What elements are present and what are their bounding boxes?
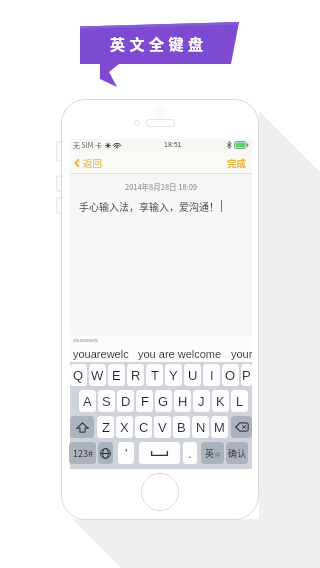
button[interactable]: . — [183, 442, 197, 464]
button[interactable]: C — [135, 416, 152, 438]
button[interactable]: X — [116, 416, 133, 438]
button[interactable]: I — [203, 364, 220, 386]
button[interactable]: A — [79, 390, 96, 412]
button[interactable]: V — [154, 416, 171, 438]
button[interactable]: Shift — [70, 416, 94, 438]
staticText: H — [178, 394, 188, 409]
staticText: V — [158, 420, 167, 435]
staticText: U — [188, 368, 198, 383]
staticText: 18:51 — [164, 141, 182, 149]
staticText: M — [214, 420, 225, 435]
staticText: J — [198, 394, 205, 409]
staticText: 2014年8月28日 18:09 — [70, 181, 252, 192]
button[interactable]: H — [174, 390, 191, 412]
staticText: Y — [169, 368, 178, 383]
button[interactable]: T — [146, 364, 163, 386]
staticText: . — [188, 446, 192, 461]
button[interactable]: B — [173, 416, 190, 438]
staticText: 返回 — [83, 156, 103, 170]
button[interactable]: W — [89, 364, 106, 386]
button[interactable]: N — [192, 416, 209, 438]
other: Backspace — [235, 422, 249, 432]
staticText: F — [141, 394, 149, 409]
staticText: D — [121, 394, 131, 409]
staticText: C — [139, 420, 149, 435]
staticText: 123# — [73, 447, 93, 460]
button[interactable]: you are welcome — [138, 348, 222, 360]
button[interactable]: J — [193, 390, 210, 412]
button[interactable]: S — [98, 390, 115, 412]
staticText: E — [112, 368, 121, 383]
staticText: 手心输入法，享输入，爱沟通！ — [79, 199, 219, 213]
other: Switch language — [100, 448, 111, 459]
staticText: P — [242, 368, 251, 383]
button[interactable]: ' — [118, 442, 134, 464]
staticText: 英 — [205, 447, 215, 460]
button[interactable]: E — [108, 364, 125, 386]
button[interactable]: F — [136, 390, 153, 412]
staticText: Z — [102, 420, 110, 435]
staticText: 无 SIM 卡 — [73, 140, 103, 150]
button[interactable]: O — [222, 364, 239, 386]
button[interactable]: Switch language — [98, 442, 113, 464]
button[interactable]: 确认 — [226, 442, 248, 464]
staticText: S — [102, 394, 111, 409]
button[interactable]: L — [231, 390, 248, 412]
button[interactable]: Y — [165, 364, 182, 386]
button[interactable]: Space — [139, 442, 180, 464]
button[interactable]: your — [231, 348, 252, 360]
button[interactable]: P — [241, 364, 252, 386]
button[interactable]: Z — [97, 416, 114, 438]
staticText: W — [91, 368, 104, 383]
staticText: L — [236, 394, 244, 409]
button[interactable]: K — [212, 390, 229, 412]
button[interactable]: youarewelc — [73, 348, 129, 360]
button[interactable]: M — [211, 416, 228, 438]
button[interactable]: 123# — [69, 442, 96, 464]
staticText: 英文全键盘 — [110, 33, 208, 55]
button[interactable]: 英 — [201, 442, 224, 464]
button[interactable]: 返回 — [74, 156, 103, 170]
staticText: T — [151, 368, 159, 383]
staticText: A — [83, 394, 92, 409]
staticText: ' — [125, 446, 128, 461]
staticText: G — [158, 394, 169, 409]
staticText: 中 — [215, 451, 221, 459]
button[interactable]: D — [117, 390, 134, 412]
button[interactable]: G — [155, 390, 172, 412]
button[interactable]: R — [127, 364, 144, 386]
staticText: youarewelc — [73, 337, 99, 343]
button[interactable]: Backspace — [231, 416, 252, 438]
staticText: 确认 — [228, 447, 247, 460]
staticText: R — [131, 368, 141, 383]
button[interactable]: Q — [70, 364, 87, 386]
button[interactable]: U — [184, 364, 201, 386]
button[interactable]: 完成 — [227, 156, 247, 170]
staticText: Q — [73, 368, 84, 383]
staticText: I — [210, 368, 214, 383]
staticText: B — [177, 420, 186, 435]
other: Shift — [76, 422, 89, 433]
staticText: X — [120, 420, 129, 435]
staticText: O — [225, 368, 236, 383]
staticText: N — [196, 420, 206, 435]
staticText: K — [216, 394, 225, 409]
